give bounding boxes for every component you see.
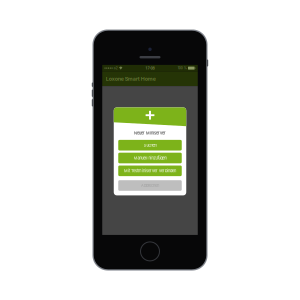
button[interactable]: Suchen [118, 140, 182, 150]
button[interactable]: Mit Testminiserver verbinden [118, 165, 182, 176]
staticText: Mit Testminiserver verbinden [124, 168, 176, 173]
staticText: Abbrechen [141, 183, 159, 188]
staticText: Manuell hinzufügen [133, 156, 166, 160]
button[interactable]: Manuell hinzufügen [118, 153, 182, 163]
staticText: Loxone Smart Home [106, 75, 156, 82]
staticText: o2 [114, 66, 118, 70]
staticText: Der Miniserver wurde noch nicht gefunden [115, 158, 184, 163]
staticText: 100 % [178, 66, 187, 70]
staticText: Suchen [143, 143, 156, 148]
button[interactable]: Abbrechen [118, 180, 182, 191]
staticText: 17:08 [145, 66, 154, 70]
staticText: Neuer Miniserver [134, 131, 166, 135]
